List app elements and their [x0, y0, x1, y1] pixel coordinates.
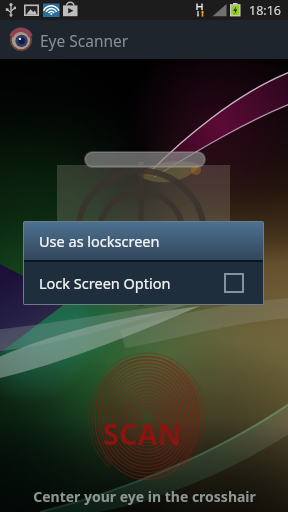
staticText: Eye Scanner: [40, 30, 129, 51]
staticText: SCAN: [103, 414, 182, 453]
staticText: Center your eye in the crosshair: [33, 487, 256, 506]
staticText: Use as lockscreen: [39, 231, 160, 251]
button[interactable]: SCAN: [103, 414, 182, 453]
button[interactable]: Lock Screen Option: [24, 262, 263, 304]
staticText: Lock Screen Option: [39, 273, 171, 293]
button[interactable]: Use as lockscreen: [24, 222, 263, 260]
button[interactable]: Eye Scanner: [0, 20, 288, 59]
staticText: 18:16: [249, 2, 281, 19]
